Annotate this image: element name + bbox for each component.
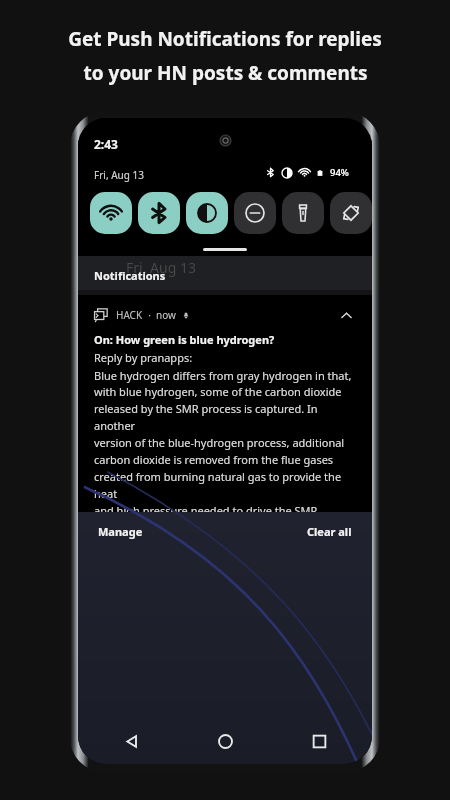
button[interactable]: Recent apps	[302, 724, 336, 758]
staticText: Get Push Notifications for replies	[68, 26, 382, 52]
button[interactable]: Collapse notification	[336, 305, 356, 325]
staticText: Notifications	[94, 268, 166, 283]
staticText: 2:43	[94, 136, 118, 152]
button[interactable]: Clear all	[303, 520, 356, 543]
button[interactable]: HACK	[78, 295, 372, 512]
staticText: Reply by pranapps:	[94, 350, 193, 365]
staticText: Manage	[98, 524, 143, 539]
button[interactable]: Quick setting	[90, 192, 132, 234]
staticText: HACK	[116, 308, 143, 322]
staticText: 94%	[330, 166, 349, 179]
staticText: Blue hydrogen differs from gray hydrogen…	[94, 368, 356, 512]
button[interactable]: Quick setting	[186, 192, 228, 234]
staticText: Clear all	[307, 524, 352, 539]
staticText: Fri, Aug 13	[126, 258, 196, 277]
button[interactable]: Quick setting	[330, 192, 372, 234]
staticText: On: How green is blue hydrogen?	[94, 332, 275, 347]
button[interactable]: Home	[208, 724, 242, 758]
button[interactable]: Quick setting	[138, 192, 180, 234]
staticText: Fri, Aug 13	[94, 168, 144, 182]
staticText: · now	[143, 308, 176, 322]
button[interactable]: Quick setting	[234, 192, 276, 234]
staticText: to your HN posts & comments	[83, 60, 368, 86]
button[interactable]: Manage	[94, 520, 147, 543]
button[interactable]: Quick setting	[282, 192, 324, 234]
button[interactable]: Back	[114, 724, 148, 758]
